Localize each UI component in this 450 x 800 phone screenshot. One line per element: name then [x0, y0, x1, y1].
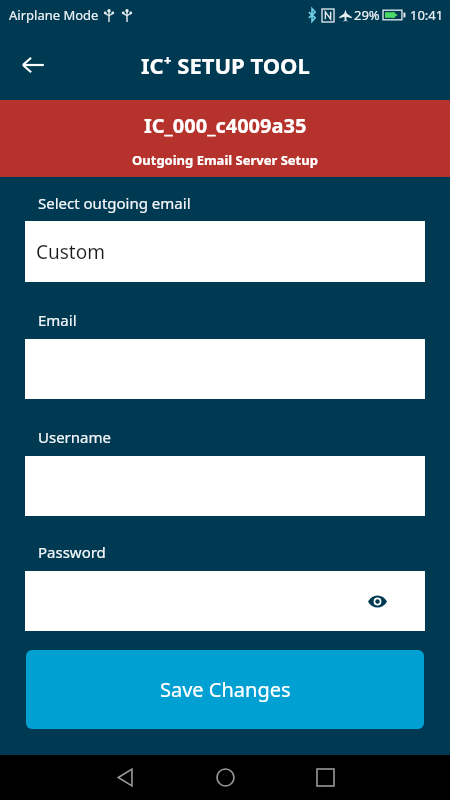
staticText: Password: [38, 542, 106, 562]
button[interactable]: Home: [200, 755, 250, 800]
button[interactable]: Back: [100, 755, 150, 800]
staticText: Custom: [36, 239, 105, 265]
staticText: Select outgoing email: [38, 193, 191, 213]
staticText: Username: [38, 427, 111, 447]
staticText: Airplane Mode: [9, 6, 99, 24]
staticText: IC⁺ SETUP TOOL: [141, 50, 310, 80]
staticText: Email: [38, 310, 77, 330]
staticText: Save Changes: [160, 676, 291, 703]
button[interactable]: Back: [10, 42, 56, 88]
button[interactable]: Custom: [25, 221, 425, 282]
staticText: IC_000_c4009a35: [144, 112, 307, 139]
button[interactable]: Recent apps: [300, 755, 350, 800]
button[interactable]: Show password: [25, 571, 425, 631]
staticText: Outgoing Email Server Setup: [132, 151, 318, 169]
staticText: 29%: [354, 6, 380, 24]
staticText: 10:41: [410, 6, 444, 24]
button[interactable]: Save Changes: [26, 650, 424, 729]
button[interactable]: Show password: [363, 587, 391, 615]
